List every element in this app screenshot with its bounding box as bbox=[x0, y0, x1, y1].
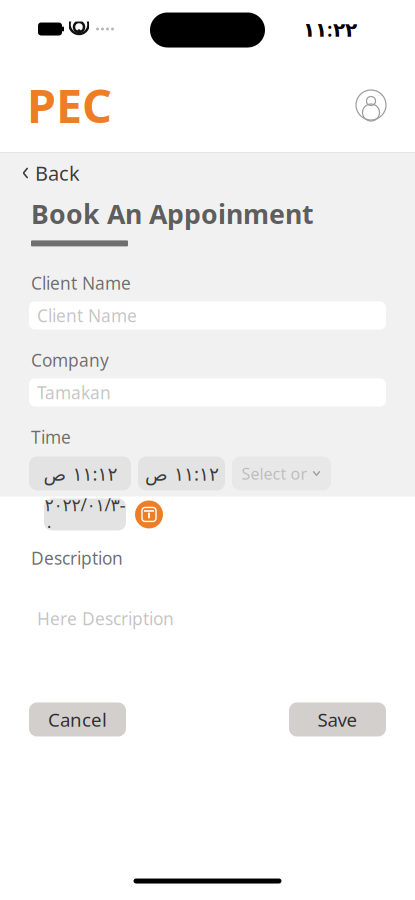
button[interactable]: Select or bbox=[232, 456, 331, 490]
button[interactable]: ١١:١٢ ص bbox=[29, 456, 131, 490]
staticText: Back bbox=[35, 160, 80, 186]
staticText: ١١:٢٢ bbox=[303, 16, 357, 42]
button[interactable]: Pick date bbox=[135, 500, 163, 528]
button[interactable]: Save bbox=[289, 702, 386, 736]
button[interactable]: Account bbox=[354, 88, 388, 122]
staticText: Time bbox=[31, 425, 71, 448]
staticText: ٢٠٢٢/٠١/٣٠ bbox=[44, 493, 125, 536]
button[interactable]: Tamakan bbox=[0, 378, 415, 406]
staticText: Here Description bbox=[37, 607, 174, 630]
staticText: PEC bbox=[27, 74, 112, 136]
staticText: Company bbox=[31, 348, 109, 371]
button[interactable]: Here Description bbox=[0, 576, 415, 660]
staticText: ١١:١٢ ص bbox=[144, 461, 218, 486]
button[interactable]: Cancel bbox=[29, 702, 126, 736]
staticText: Select or bbox=[241, 463, 307, 484]
staticText: Client Name bbox=[37, 304, 137, 327]
button[interactable]: Back bbox=[0, 153, 415, 193]
button[interactable]: PEC Home bbox=[27, 74, 112, 136]
button[interactable]: Client Name bbox=[0, 301, 415, 329]
staticText: Save bbox=[317, 707, 357, 732]
button[interactable]: ٢٠٢٢/٠١/٣٠ bbox=[44, 498, 126, 530]
button[interactable]: ١١:١٢ ص bbox=[138, 456, 225, 490]
staticText: Client Name bbox=[31, 271, 131, 294]
staticText: Cancel bbox=[48, 707, 107, 732]
staticText: Tamakan bbox=[37, 381, 111, 404]
staticText: ١١:١٢ ص bbox=[43, 461, 117, 486]
staticText: Book An Appoinment bbox=[31, 196, 314, 231]
staticText: Description bbox=[31, 546, 123, 569]
